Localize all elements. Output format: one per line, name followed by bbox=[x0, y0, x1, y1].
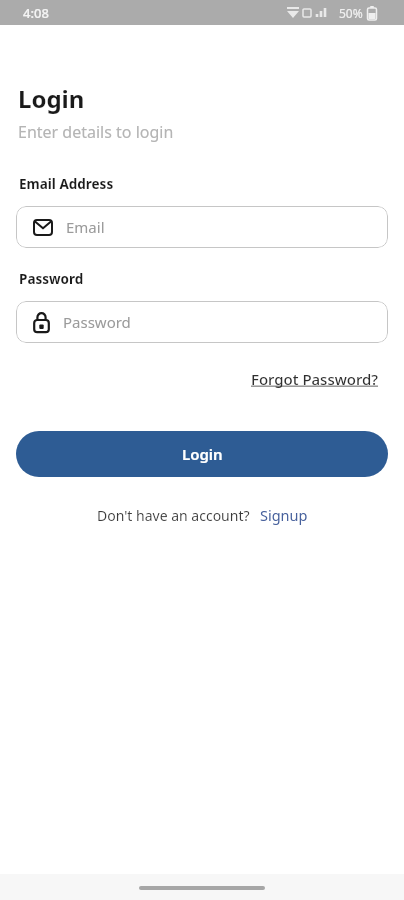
staticText: Don't have an account? bbox=[97, 506, 250, 525]
staticText: 50% bbox=[339, 5, 363, 21]
staticText: Password bbox=[19, 270, 84, 288]
staticText: Enter details to login bbox=[18, 121, 174, 143]
button[interactable]: Forgot Password? bbox=[251, 369, 379, 389]
button[interactable]: Password bbox=[16, 301, 388, 343]
button[interactable]: Login bbox=[16, 431, 388, 477]
staticText: Email Address bbox=[19, 175, 114, 193]
staticText: Login bbox=[182, 444, 223, 464]
button[interactable]: Signup bbox=[260, 505, 308, 525]
button[interactable]: Email bbox=[16, 206, 388, 248]
staticText: Email bbox=[66, 217, 105, 237]
staticText: Login bbox=[18, 82, 85, 115]
staticText: Password bbox=[63, 312, 131, 332]
staticText: 4:08 bbox=[23, 4, 49, 22]
